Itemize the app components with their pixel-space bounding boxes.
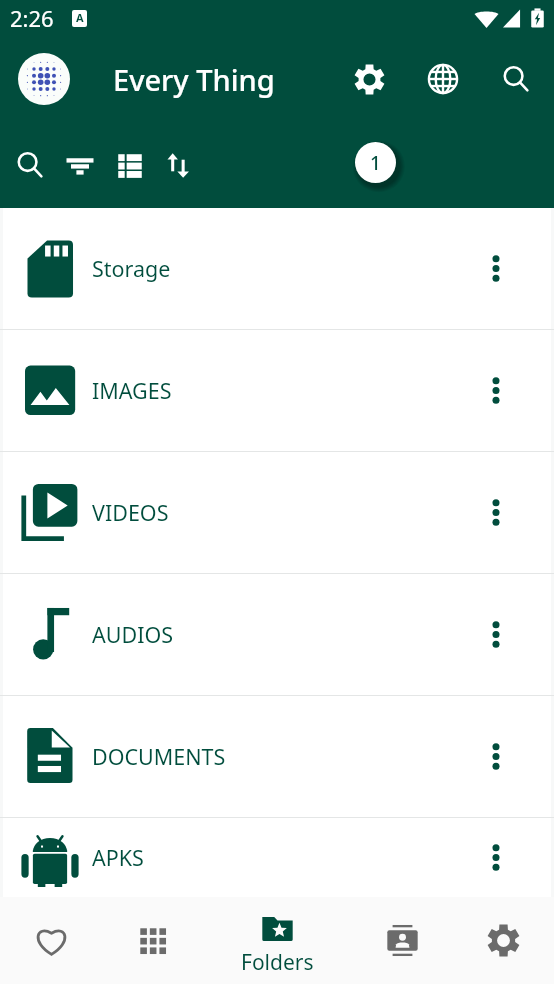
staticText: DOCUMENTS [92,742,226,771]
staticText: APKS [92,843,144,872]
button[interactable]: Contacts [351,897,453,984]
button[interactable]: APKS [3,818,551,897]
button[interactable]: VIDEOS [3,452,551,573]
button[interactable]: Language [423,59,463,99]
button[interactable]: More options [467,574,525,695]
button[interactable]: Selected count 1 [355,142,396,183]
staticText: Folders [241,948,314,977]
button[interactable]: Folders [219,897,335,984]
button[interactable]: Apps [102,897,203,984]
staticText: 1 [370,150,381,176]
button[interactable]: Filter [60,145,100,185]
button[interactable]: More options [467,330,525,451]
button[interactable]: Search files [10,145,50,185]
button[interactable]: Sort [158,145,198,185]
button[interactable]: Search [496,59,536,99]
button[interactable]: More options [467,452,525,573]
staticText: Storage [92,254,171,283]
button[interactable]: View mode [110,145,150,185]
staticText: 2:26 [10,3,54,33]
button[interactable]: More options [467,818,525,897]
button[interactable]: Settings [453,897,554,984]
staticText: VIDEOS [92,498,169,527]
staticText: AUDIOS [92,620,174,649]
button[interactable]: DOCUMENTS [3,696,551,817]
button[interactable]: App logo [18,53,70,105]
button[interactable]: Storage [3,208,551,329]
staticText: A [76,10,84,25]
button[interactable]: More options [467,208,525,329]
button[interactable]: Favorites [0,897,102,984]
button[interactable]: IMAGES [3,330,551,451]
button[interactable]: Settings [349,59,389,99]
button[interactable]: More options [467,696,525,817]
staticText: Every Thing [113,60,275,99]
staticText: IMAGES [92,376,172,405]
button[interactable]: AUDIOS [3,574,551,695]
